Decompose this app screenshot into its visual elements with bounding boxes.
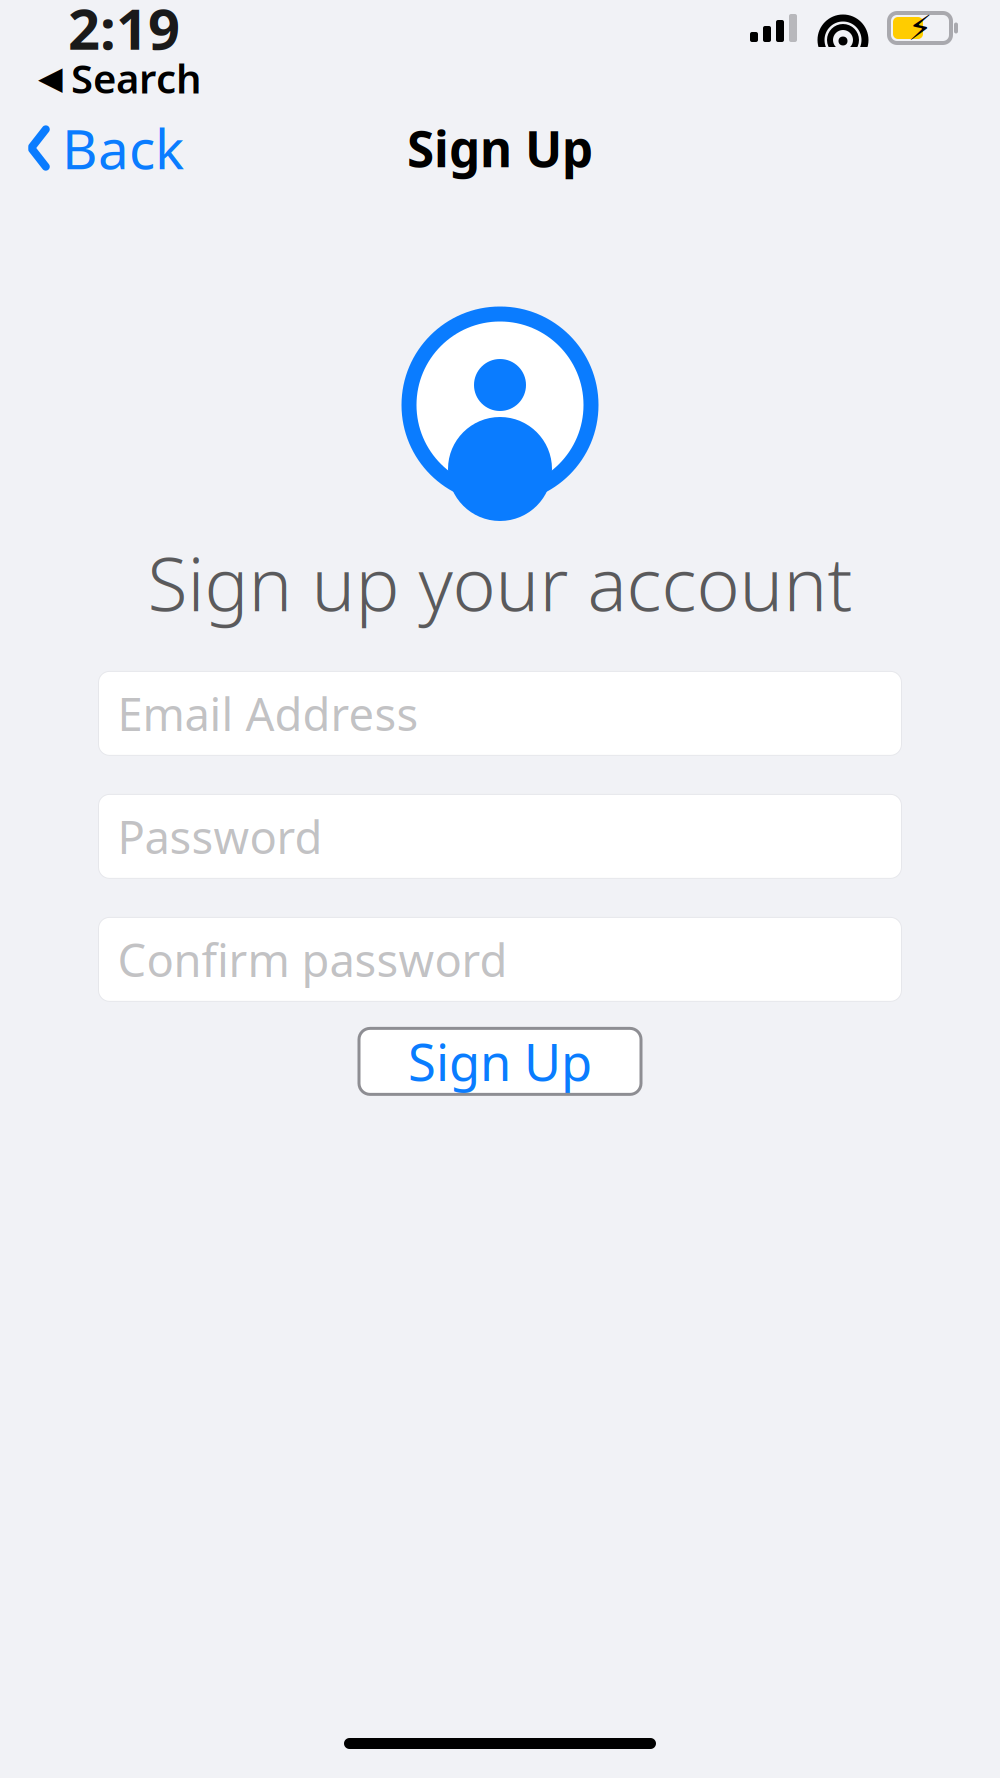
staticText: ⚡︎ xyxy=(908,8,932,48)
staticText: Confirm password xyxy=(117,929,507,989)
staticText: ◀ xyxy=(38,60,63,96)
staticText: Search xyxy=(71,51,202,104)
staticText: Back xyxy=(62,112,184,184)
staticText: Email Address xyxy=(117,683,418,743)
button[interactable]: Sign Up xyxy=(359,1028,641,1094)
staticText: 2:19 xyxy=(68,0,180,65)
button[interactable]: Back xyxy=(0,100,184,196)
staticText: Sign Up xyxy=(408,1028,592,1095)
staticText: Sign up your account xyxy=(147,534,852,631)
staticText: Password xyxy=(117,806,322,866)
staticText: Sign Up xyxy=(407,115,593,181)
